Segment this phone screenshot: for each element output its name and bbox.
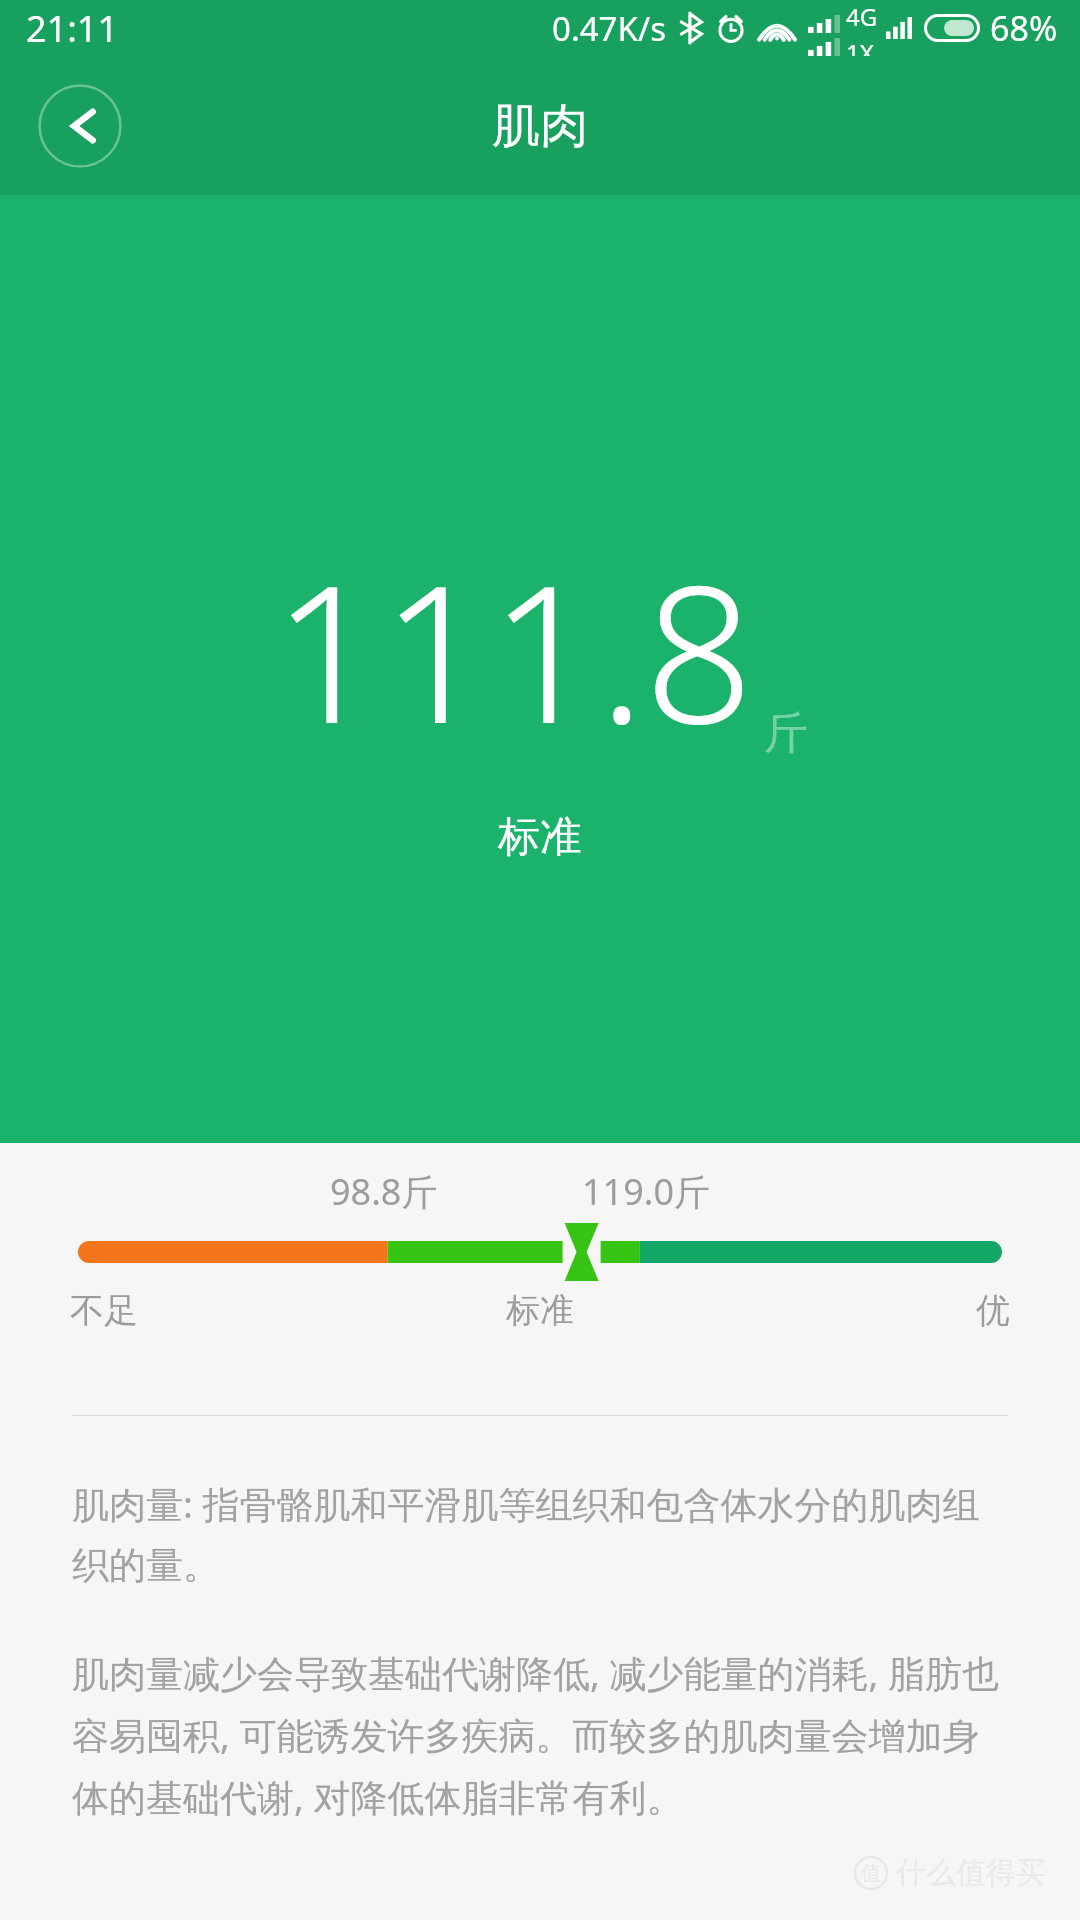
staticText: 优 [976,1289,1010,1332]
staticText: 标准 [506,1289,574,1332]
staticText: 什么值得买 [896,1854,1046,1892]
staticText: 21:11 [26,4,119,53]
staticText: 值 [861,1861,881,1886]
staticText: 111.8 [273,520,754,779]
staticText: 4G [846,0,878,33]
staticText: 68% [990,5,1058,51]
staticText: 119.0斤 [582,1167,711,1216]
staticText: 斤 [764,706,808,761]
staticText: 98.8斤 [330,1167,438,1216]
staticText: 肌肉量减少会导致基础代谢降低, 减少能量的消耗, 脂肪也容易囤积, 可能诱发许多… [72,1647,1008,1822]
button[interactable]: Back [38,84,122,168]
staticText: 1X [846,36,874,56]
staticText: 标准 [498,811,582,864]
staticText: 肌肉 [492,96,588,156]
staticText: 肌肉量: 指骨骼肌和平滑肌等组织和包含体水分的肌肉组织的量。 [72,1478,1008,1589]
staticText: 0.47K/s [552,6,666,51]
staticText: 不足 [70,1289,138,1332]
